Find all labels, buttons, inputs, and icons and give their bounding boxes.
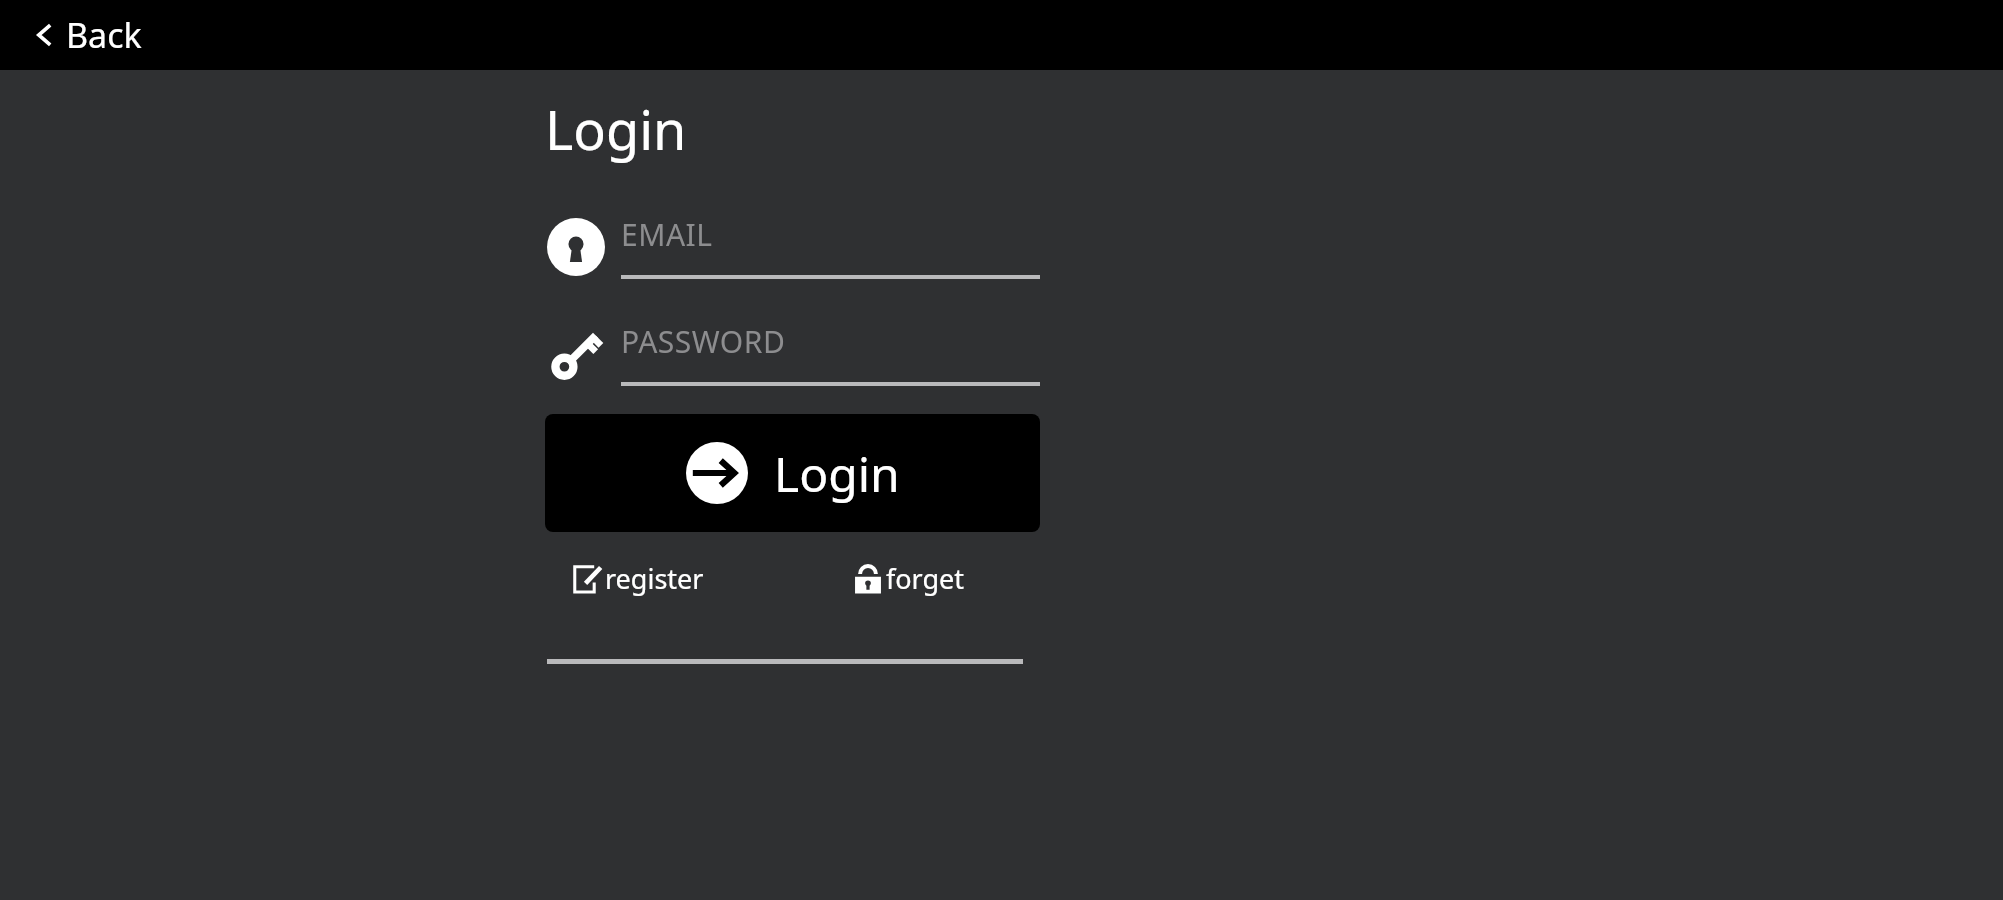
other: Password — [545, 323, 607, 385]
button[interactable]: Back — [24, 6, 150, 64]
button[interactable]: Email — [545, 214, 1040, 279]
button[interactable]: Password — [545, 321, 1040, 386]
staticText: forget — [886, 560, 965, 597]
staticText: PASSWORD — [621, 321, 786, 362]
staticText: Back — [66, 12, 142, 58]
other: Email — [545, 216, 607, 278]
other: Back — [32, 22, 58, 48]
staticText: Login — [774, 441, 900, 506]
staticText: EMAIL — [621, 214, 713, 255]
button[interactable]: Login — [545, 414, 1040, 532]
staticText: Login — [545, 92, 687, 166]
button[interactable]: forget — [850, 560, 965, 597]
button[interactable]: register — [569, 560, 704, 597]
staticText: register — [605, 560, 704, 597]
